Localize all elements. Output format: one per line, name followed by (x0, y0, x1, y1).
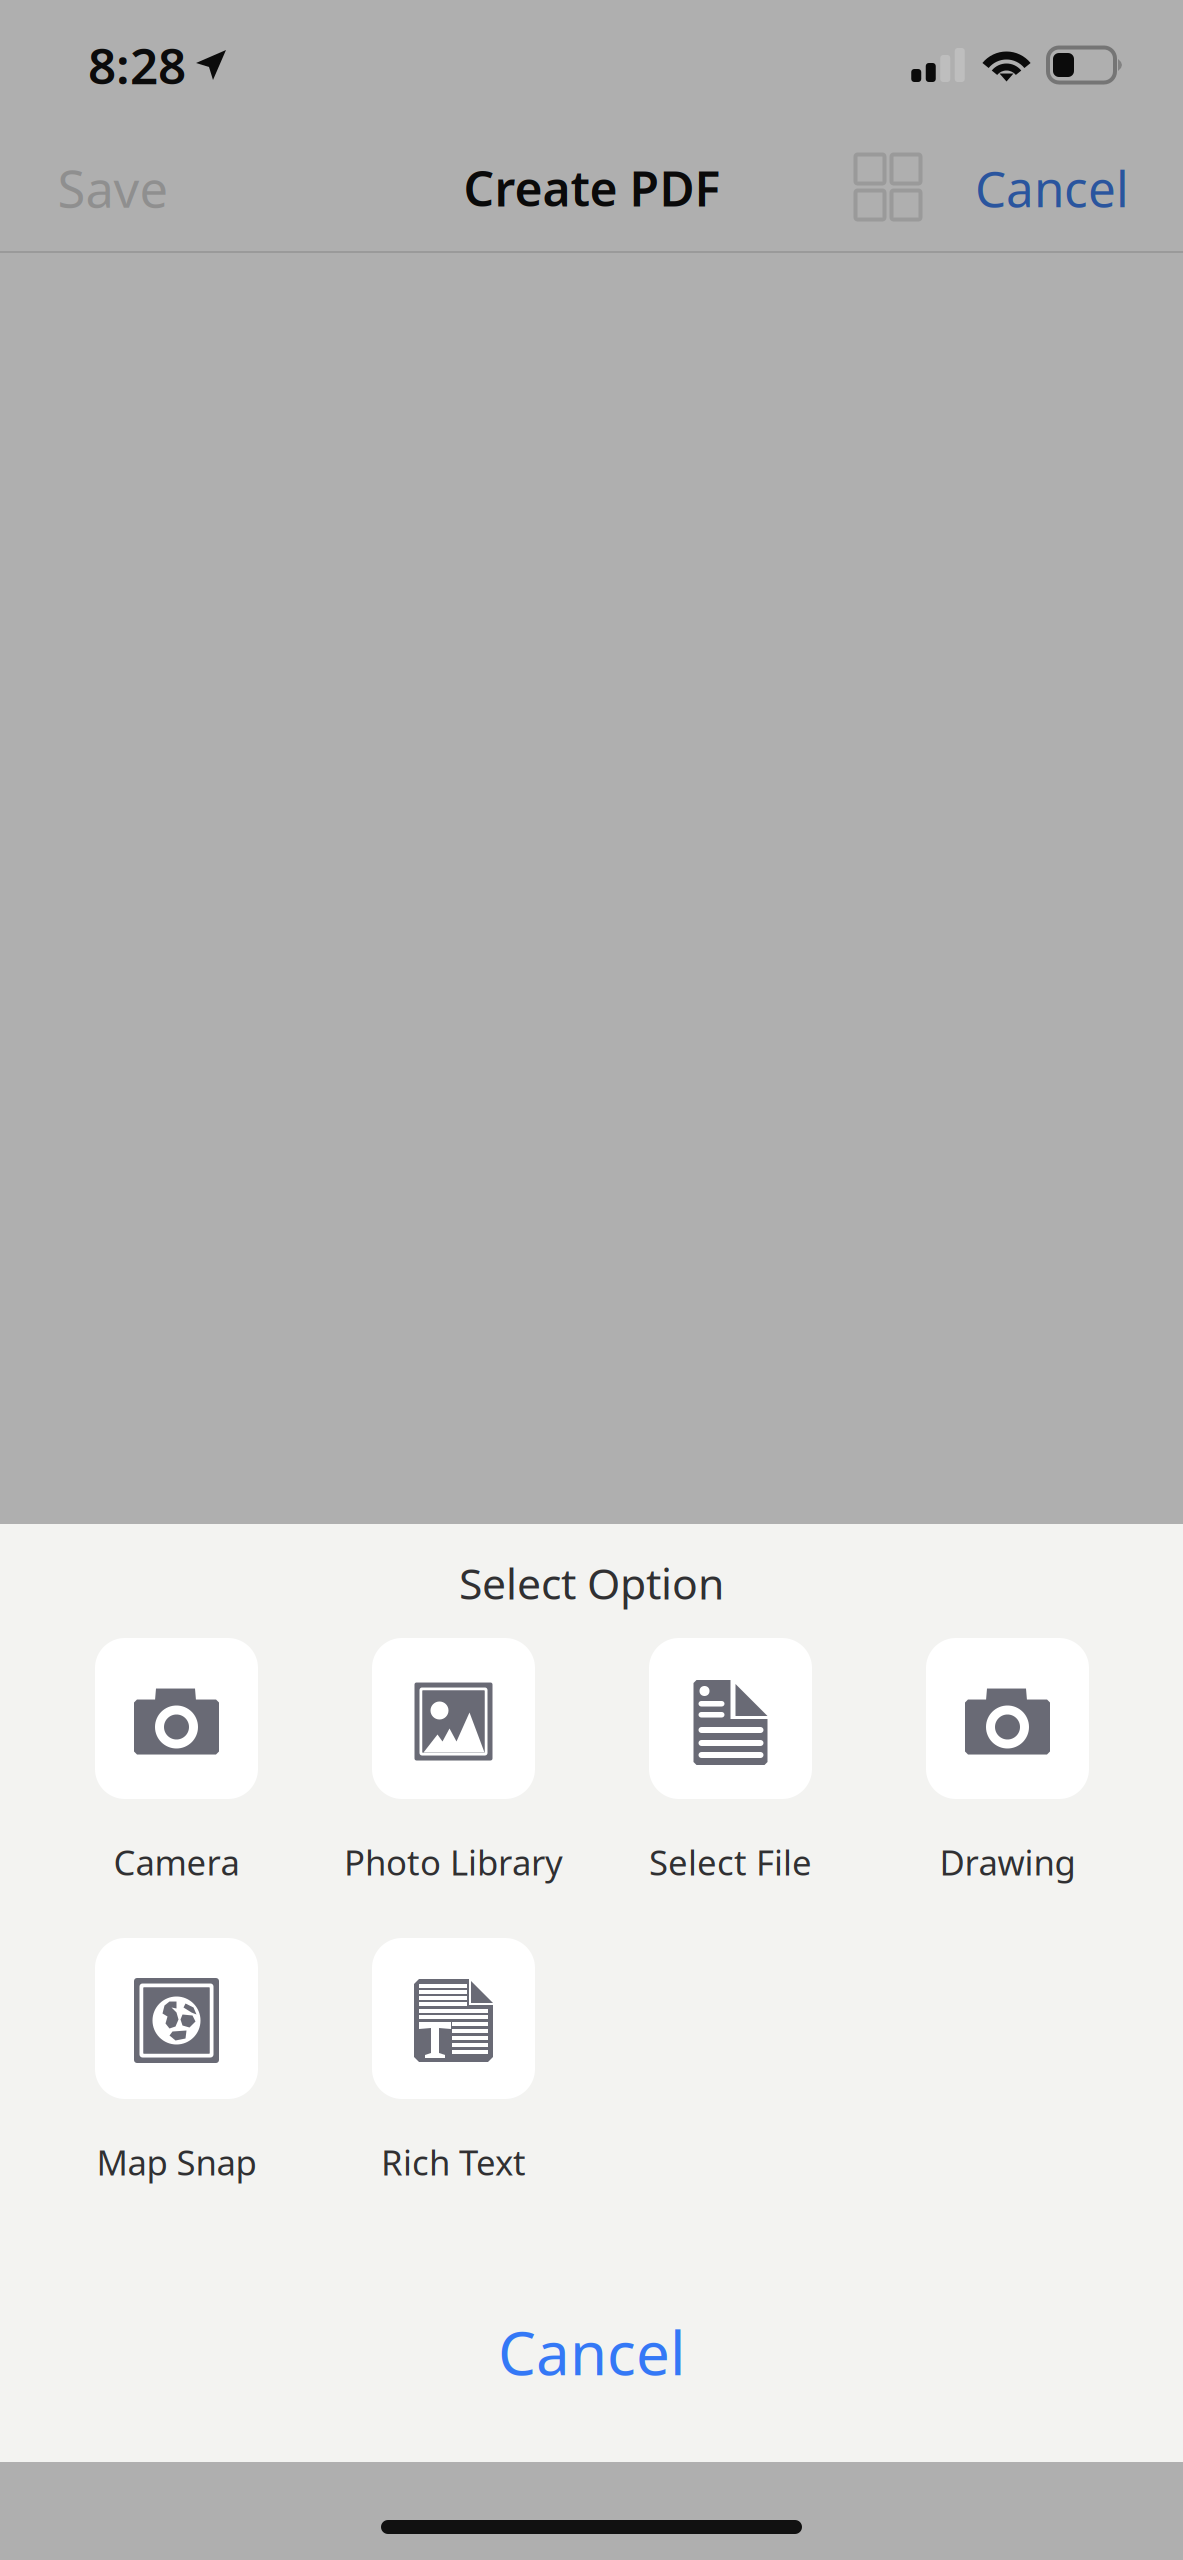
button[interactable]: Page layout (833, 132, 943, 242)
staticText: Save (57, 154, 168, 222)
button[interactable]: Save (38, 133, 188, 243)
staticText: Photo Library (344, 1839, 563, 1885)
staticText: Camera (113, 1839, 239, 1885)
staticText: Cancel (498, 2312, 685, 2392)
button[interactable]: Cancel (957, 133, 1147, 243)
staticText: Create PDF (463, 156, 720, 220)
button[interactable]: Select File (615, 1638, 845, 1886)
button[interactable]: Photo Library (338, 1638, 568, 1886)
staticText: 8:28 (88, 32, 186, 98)
staticText: Select File (649, 1839, 812, 1885)
staticText: Rich Text (381, 2139, 526, 2185)
staticText: Select Option (459, 1555, 724, 1611)
button[interactable]: Map Snap (61, 1938, 291, 2186)
staticText: Cancel (975, 155, 1129, 221)
button[interactable]: Camera (61, 1638, 291, 1886)
staticText: Drawing (939, 1839, 1075, 1885)
button[interactable]: Drawing (892, 1638, 1122, 1886)
button[interactable]: Cancel (391, 2302, 791, 2402)
button[interactable]: Rich Text (338, 1938, 568, 2186)
staticText: Map Snap (96, 2139, 256, 2185)
